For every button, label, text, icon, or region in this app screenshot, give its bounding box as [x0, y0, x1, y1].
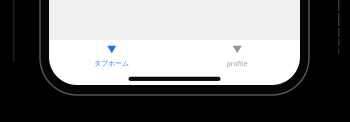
- staticText: タブホーム: [94, 59, 129, 67]
- button[interactable]: profile: [174, 40, 300, 69]
- button[interactable]: タブホーム: [49, 40, 174, 69]
- staticText: profile: [227, 59, 248, 68]
